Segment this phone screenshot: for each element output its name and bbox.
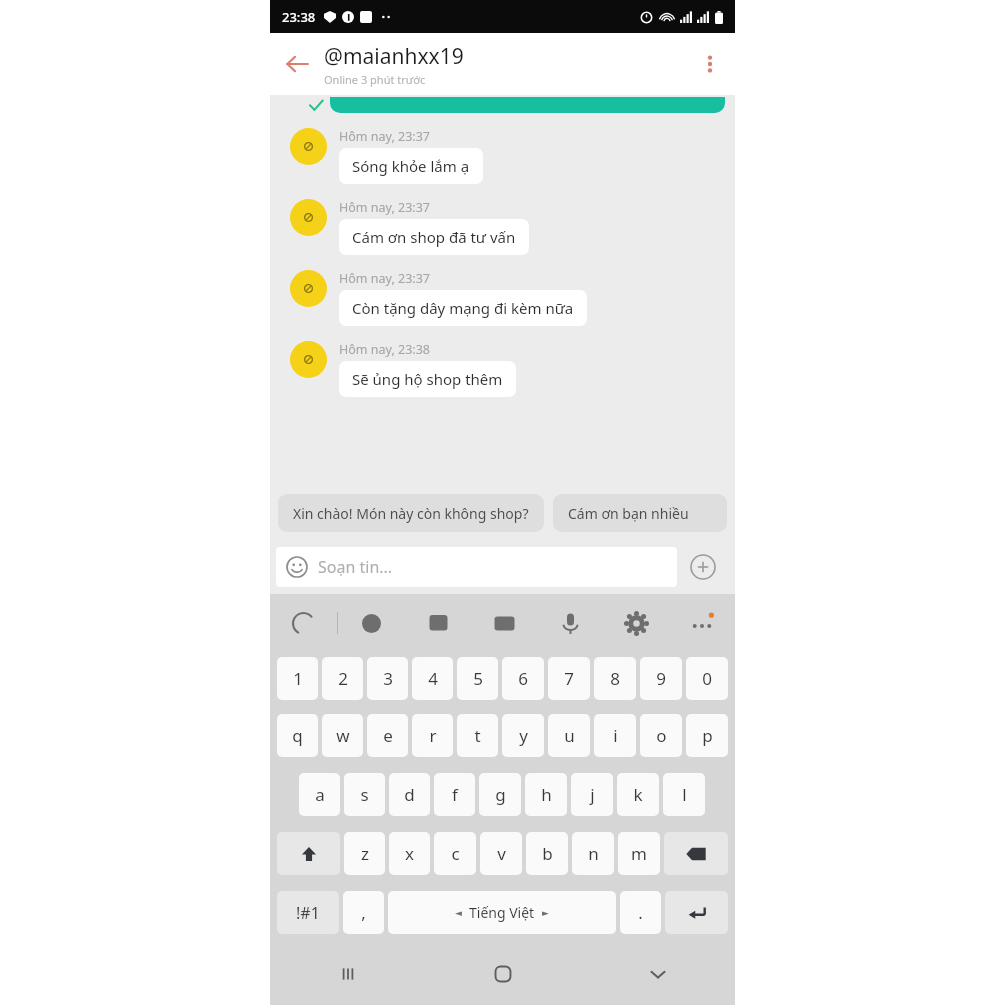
button[interactable]: b <box>526 832 568 875</box>
button[interactable]: 6 <box>502 657 544 700</box>
button[interactable]: x <box>389 832 430 875</box>
staticText: j <box>590 783 595 806</box>
button[interactable]: u <box>548 714 590 757</box>
staticText: Còn tặng dây mạng đi kèm nữa <box>352 298 574 318</box>
staticText: e <box>383 724 393 747</box>
button[interactable]: , <box>343 891 384 934</box>
button[interactable]: 8 <box>594 657 636 700</box>
button[interactable]: !#1 <box>277 891 339 934</box>
staticText: q <box>292 724 303 747</box>
button[interactable]: Home <box>425 943 580 1005</box>
staticText: 5 <box>473 667 483 690</box>
button[interactable]: 0 <box>686 657 728 700</box>
button[interactable]: g <box>479 773 521 816</box>
button[interactable]: i <box>594 714 636 757</box>
button[interactable]: a <box>299 773 340 816</box>
button[interactable]: Settings <box>603 594 669 652</box>
button[interactable]: Shift <box>277 832 340 875</box>
staticText: Hôm nay, 23:37 <box>339 270 430 287</box>
button[interactable]: o <box>640 714 682 757</box>
button[interactable]: d <box>389 773 430 816</box>
button[interactable]: e <box>367 714 408 757</box>
button[interactable]: Text mode <box>270 594 337 652</box>
staticText: Sẽ ủng hộ shop thêm <box>352 369 503 389</box>
button[interactable]: Hide keyboard <box>580 943 735 1005</box>
staticText: Hôm nay, 23:38 <box>339 341 430 358</box>
staticText: v <box>497 842 506 865</box>
staticText: d <box>404 783 415 806</box>
button[interactable]: f <box>434 773 475 816</box>
staticText: . <box>638 901 643 924</box>
staticText: z <box>361 842 369 865</box>
button[interactable]: Sẽ ủng hộ shop thêm <box>339 361 516 397</box>
button[interactable]: 9 <box>640 657 682 700</box>
button[interactable] <box>330 97 725 113</box>
staticText: m <box>631 842 647 865</box>
button[interactable]: c <box>434 832 476 875</box>
button[interactable]: 7 <box>548 657 590 700</box>
button[interactable]: . <box>620 891 661 934</box>
staticText: Sóng khỏe lắm ạ <box>352 156 470 176</box>
button[interactable]: Backspace <box>664 832 728 875</box>
staticText: p <box>702 724 713 747</box>
button[interactable]: Soạn tin... <box>276 547 677 587</box>
staticText: Hôm nay, 23:37 <box>339 199 430 216</box>
staticText: b <box>542 842 553 865</box>
button[interactable]: Stickers <box>405 594 471 652</box>
button[interactable]: Cám ơn shop đã tư vấn <box>339 219 529 255</box>
button[interactable]: q <box>277 714 318 757</box>
staticText: ► <box>542 908 549 918</box>
staticText: 7 <box>564 667 574 690</box>
button[interactable]: j <box>571 773 613 816</box>
staticText: 0 <box>702 667 712 690</box>
button[interactable]: ◄ <box>388 891 616 934</box>
button[interactable]: t <box>457 714 498 757</box>
button[interactable]: l <box>663 773 705 816</box>
button[interactable]: p <box>686 714 728 757</box>
button[interactable]: Add attachment <box>677 541 729 593</box>
button[interactable]: Enter <box>665 891 728 934</box>
staticText: Cám ơn bạn nhiều nhé! <box>568 504 712 523</box>
button[interactable]: Sóng khỏe lắm ạ <box>339 148 483 184</box>
button[interactable]: More <box>669 594 735 652</box>
button[interactable]: Emoji <box>338 594 405 652</box>
staticText: Online 3 phút trước <box>324 72 426 87</box>
button[interactable]: Voice input <box>537 594 603 652</box>
button[interactable]: Xin chào! Món này còn không shop? <box>278 494 544 532</box>
staticText: f <box>452 783 458 806</box>
button[interactable]: z <box>344 832 385 875</box>
staticText: ◄ <box>455 908 462 918</box>
button[interactable]: m <box>618 832 660 875</box>
staticText: k <box>633 783 643 806</box>
button[interactable]: 2 <box>322 657 363 700</box>
button[interactable]: 3 <box>367 657 408 700</box>
button[interactable]: s <box>344 773 385 816</box>
staticText: y <box>519 724 528 747</box>
staticText: w <box>336 724 350 747</box>
staticText: 4 <box>428 667 438 690</box>
button[interactable]: More options <box>685 33 735 95</box>
button[interactable]: GIF <box>471 594 537 652</box>
staticText: o <box>656 724 667 747</box>
button[interactable]: n <box>572 832 614 875</box>
button[interactable]: 1 <box>277 657 318 700</box>
staticText: s <box>360 783 369 806</box>
button[interactable]: v <box>480 832 522 875</box>
button[interactable]: 4 <box>412 657 453 700</box>
button[interactable]: 5 <box>457 657 498 700</box>
button[interactable]: r <box>412 714 453 757</box>
button[interactable]: h <box>525 773 567 816</box>
button[interactable]: Back <box>270 33 324 95</box>
staticText: u <box>564 724 575 747</box>
staticText: @maianhxx19 <box>324 42 464 71</box>
button[interactable]: y <box>502 714 544 757</box>
staticText: x <box>405 842 414 865</box>
button[interactable]: Còn tặng dây mạng đi kèm nữa <box>339 290 587 326</box>
button[interactable]: Recents <box>270 943 425 1005</box>
button[interactable]: w <box>322 714 363 757</box>
button[interactable]: Cám ơn bạn nhiều nhé! <box>553 494 727 532</box>
button[interactable]: k <box>617 773 659 816</box>
staticText: r <box>429 724 437 747</box>
staticText: h <box>541 783 552 806</box>
staticText: 2 <box>338 667 348 690</box>
